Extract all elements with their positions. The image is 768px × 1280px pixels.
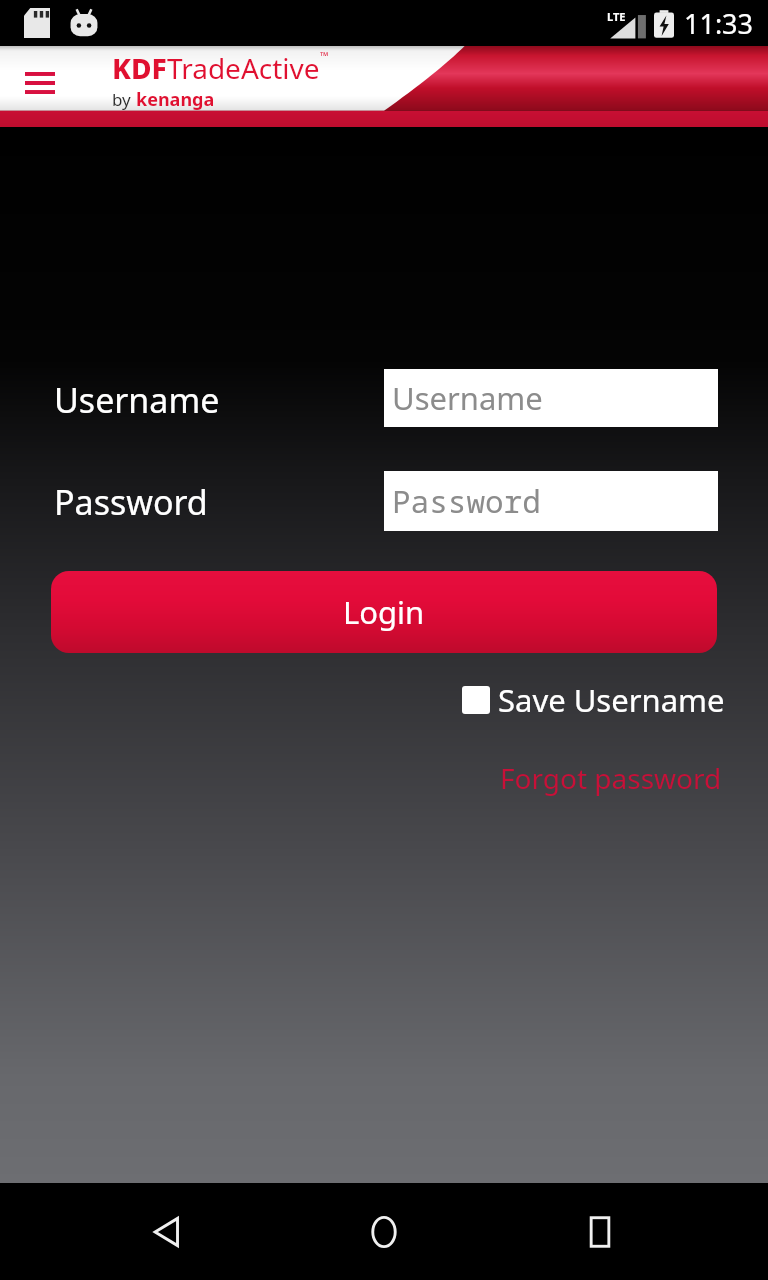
button[interactable]: Menu: [16, 59, 64, 107]
button[interactable]: Back: [120, 1184, 216, 1280]
staticText: Password: [392, 480, 541, 522]
staticText: Username: [54, 377, 220, 423]
staticText: KDF: [112, 49, 167, 87]
staticText: 11:33: [684, 5, 754, 42]
staticText: Save Username: [498, 679, 725, 721]
button[interactable]: Recent apps: [552, 1184, 648, 1280]
staticText: Forgot password: [500, 759, 722, 797]
staticText: by: [112, 88, 136, 111]
button[interactable]: Home: [336, 1184, 432, 1280]
button[interactable]: Password: [384, 471, 718, 531]
staticText: Password: [54, 479, 208, 525]
staticText: LTE: [607, 9, 626, 24]
staticText: TradeActive: [167, 49, 320, 87]
staticText: Username: [392, 377, 543, 419]
button[interactable]: Save Username: [462, 679, 725, 721]
staticText: Login: [343, 591, 425, 633]
staticText: ™: [320, 48, 329, 63]
button[interactable]: Username: [384, 369, 718, 427]
button[interactable]: Forgot password: [500, 759, 722, 797]
staticText: kenanga: [136, 87, 215, 112]
button[interactable]: Login: [51, 571, 717, 653]
